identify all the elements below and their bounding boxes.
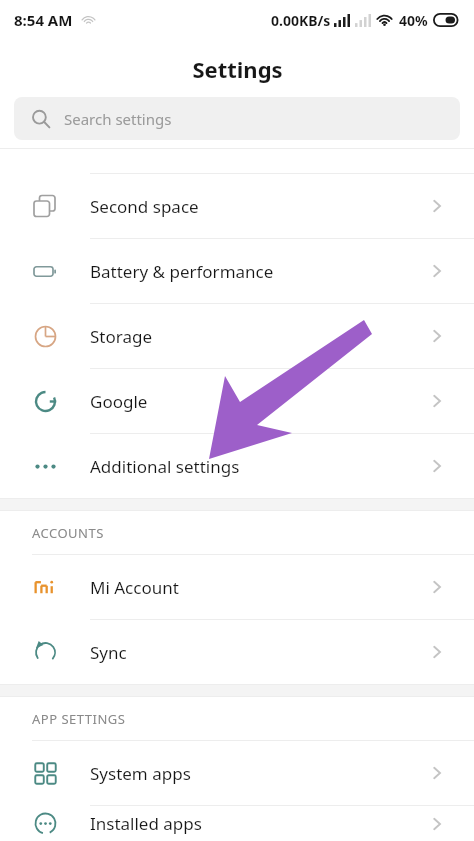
- staticText: Settings: [192, 54, 283, 84]
- staticText: 40%: [399, 11, 428, 30]
- staticText: ACCOUNTS: [32, 524, 104, 542]
- other: Storage: [33, 324, 58, 349]
- other: Mi Account: [33, 575, 57, 599]
- other: Second space: [33, 194, 58, 219]
- staticText: 0.00KB/s: [271, 11, 331, 30]
- other: Google: [33, 389, 58, 414]
- staticText: APP SETTINGS: [32, 710, 126, 728]
- staticText: Installed apps: [90, 812, 202, 835]
- button[interactable]: Second space: [0, 174, 474, 238]
- staticText: Mi Account: [90, 576, 179, 599]
- staticText: Google: [90, 390, 148, 413]
- button[interactable]: Installed apps: [0, 806, 474, 841]
- button[interactable]: Storage: [0, 304, 474, 368]
- button[interactable]: System apps: [0, 741, 474, 805]
- other: System apps: [34, 762, 57, 785]
- staticText: Sync: [90, 641, 127, 664]
- other: Sync: [33, 640, 58, 665]
- other: Battery: [33, 259, 58, 284]
- staticText: Additional settings: [90, 455, 240, 478]
- staticText: Storage: [90, 325, 153, 348]
- staticText: Battery & performance: [90, 260, 274, 283]
- staticText: Search settings: [64, 109, 172, 129]
- staticText: System apps: [90, 762, 191, 785]
- button[interactable]: Sync: [0, 620, 474, 684]
- button[interactable]: Additional settings: [0, 434, 474, 498]
- button[interactable]: Google: [0, 369, 474, 433]
- other: Additional settings: [33, 454, 58, 479]
- staticText: Second space: [90, 195, 199, 218]
- button[interactable]: Search settings: [14, 97, 460, 140]
- button[interactable]: Battery: [0, 239, 474, 303]
- other: Installed apps: [33, 811, 58, 836]
- button[interactable]: Mi Account: [0, 555, 474, 619]
- staticText: 8:54 AM: [14, 10, 73, 30]
